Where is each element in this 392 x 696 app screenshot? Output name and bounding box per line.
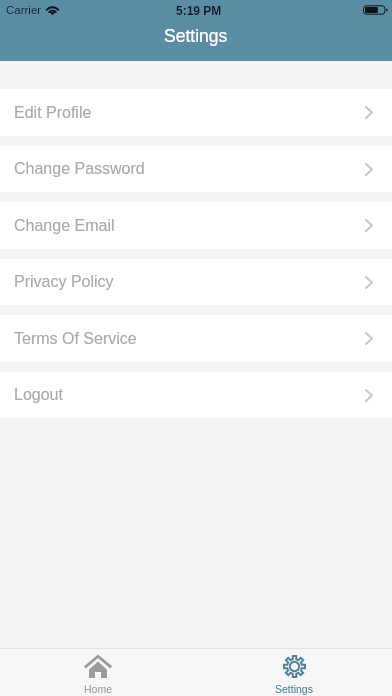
button[interactable]: Terms Of Service — [0, 315, 392, 362]
staticText: 5:19 PM — [176, 4, 222, 17]
staticText: Terms Of Service — [14, 330, 137, 348]
button[interactable]: Home — [0, 648, 196, 696]
staticText: Change Password — [14, 160, 145, 178]
staticText: Settings — [275, 683, 313, 695]
staticText: Privacy Policy — [14, 273, 114, 291]
button[interactable]: Change Password — [0, 146, 392, 192]
button[interactable]: Privacy Policy — [0, 259, 392, 305]
staticText: Change Email — [14, 217, 115, 235]
button[interactable]: Edit Profile — [0, 89, 392, 136]
staticText: Home — [84, 683, 113, 695]
staticText: Edit Profile — [14, 104, 92, 122]
staticText: Logout — [14, 386, 63, 404]
button[interactable]: Change Email — [0, 202, 392, 249]
staticText: Carrier — [6, 4, 42, 17]
staticText: Settings — [164, 26, 228, 46]
other: Home — [85, 655, 111, 678]
button[interactable]: Settings — [196, 648, 392, 696]
other: Settings — [283, 655, 306, 678]
button[interactable]: Logout — [0, 372, 392, 418]
